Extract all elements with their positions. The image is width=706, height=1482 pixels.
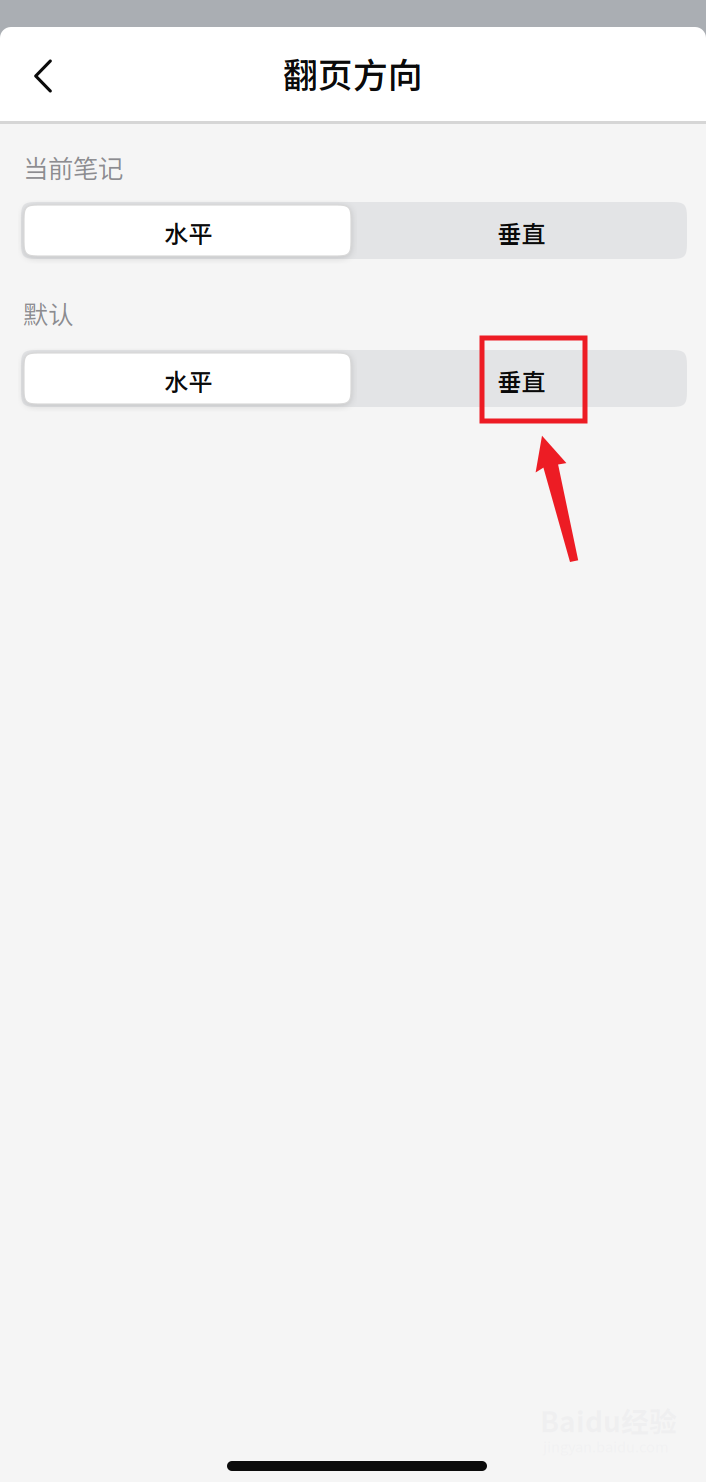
button[interactable]: 返回 (12, 29, 74, 123)
button[interactable]: 垂直 (355, 352, 688, 409)
staticText: 水平 (164, 363, 212, 398)
staticText: 当前笔记 (23, 149, 123, 185)
button[interactable]: 水平 (22, 204, 355, 261)
staticText: 垂直 (497, 215, 545, 250)
button[interactable]: 水平 (22, 352, 355, 409)
staticText: 翻页方向 (283, 48, 423, 98)
button[interactable]: 垂直 (355, 204, 688, 261)
staticText: 垂直 (497, 363, 545, 398)
staticText: 默认 (23, 295, 73, 331)
staticText: 水平 (164, 215, 212, 250)
